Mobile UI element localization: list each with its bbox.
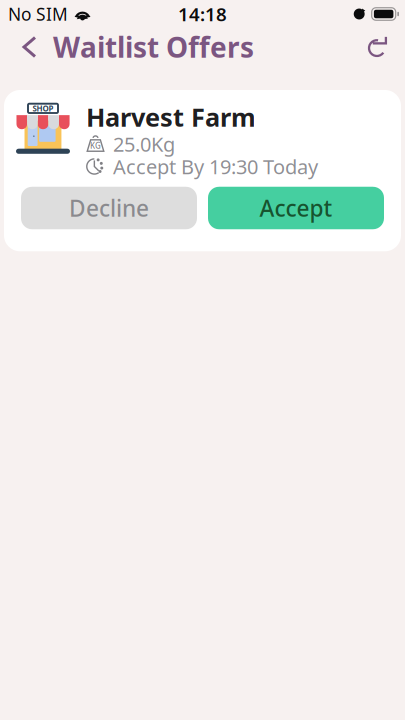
staticText: Waitlist Offers	[53, 28, 254, 66]
button[interactable]: Decline	[21, 187, 197, 229]
staticText: Accept	[259, 193, 332, 223]
staticText: SHOP	[32, 103, 53, 114]
staticText: Accept By 19:30 Today	[113, 153, 318, 180]
button[interactable]: Accept	[208, 187, 384, 229]
staticText: KG	[90, 140, 101, 151]
button[interactable]: Refresh	[354, 27, 405, 67]
staticText: Harvest Farm	[86, 100, 256, 134]
button[interactable]: Back	[0, 27, 53, 66]
staticText: Decline	[69, 193, 149, 223]
staticText: 25.0Kg	[113, 131, 175, 157]
staticText: No SIM	[8, 2, 68, 25]
staticText: 14:18	[178, 2, 227, 26]
